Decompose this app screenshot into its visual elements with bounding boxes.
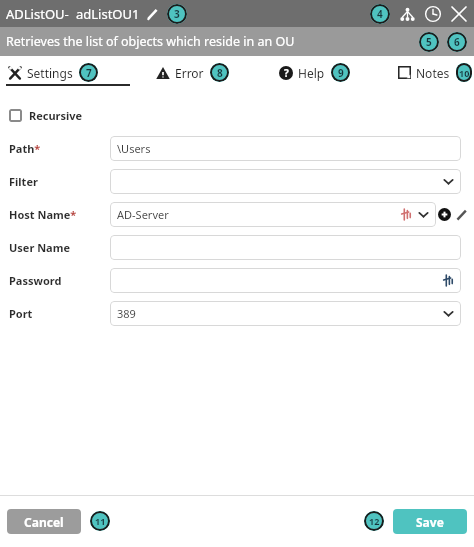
button[interactable]: ? xyxy=(277,63,352,82)
button[interactable]: Edit host xyxy=(453,206,470,223)
staticText: Password xyxy=(9,273,62,288)
staticText: 11 xyxy=(95,515,106,527)
staticText: Save xyxy=(416,514,444,530)
staticText: 8 xyxy=(217,66,223,80)
staticText: 6 xyxy=(454,35,460,49)
button[interactable]: Close xyxy=(448,3,470,25)
staticText: 9 xyxy=(338,66,344,80)
button[interactable]: AD-Server xyxy=(110,202,436,227)
staticText: Cancel xyxy=(24,514,64,530)
staticText: 4 xyxy=(377,7,383,21)
button[interactable] xyxy=(110,169,461,194)
staticText: Filter xyxy=(9,174,38,189)
staticText: Help xyxy=(298,65,325,81)
staticText: Path* xyxy=(9,141,41,156)
staticText: \Users xyxy=(117,141,151,156)
staticText: 10 xyxy=(459,67,470,79)
staticText: Error xyxy=(175,65,204,81)
button[interactable]: Recursive xyxy=(9,102,474,128)
button[interactable] xyxy=(110,235,461,260)
button[interactable]: Edit name xyxy=(145,6,161,22)
staticText: User Name xyxy=(9,240,71,255)
button[interactable]: History xyxy=(422,3,444,25)
button[interactable]: Cancel xyxy=(7,509,81,534)
staticText: Host Name* xyxy=(9,207,77,222)
button[interactable]: \Users xyxy=(110,136,461,161)
staticText: 5 xyxy=(426,35,432,49)
staticText: Notes xyxy=(416,65,450,81)
button[interactable]: Error xyxy=(154,63,231,82)
staticText: 389 xyxy=(117,306,136,321)
staticText: adListOU1 xyxy=(76,5,140,23)
staticText: ? xyxy=(284,66,289,80)
button[interactable]: Save xyxy=(393,509,467,534)
button[interactable]: Add host xyxy=(436,206,453,223)
button[interactable]: 389 xyxy=(110,301,461,326)
button[interactable] xyxy=(110,268,461,293)
button[interactable]: Notes xyxy=(396,63,474,82)
staticText: Retrieves the list of objects which resi… xyxy=(6,33,295,50)
staticText: 12 xyxy=(369,515,380,527)
staticText: ADListOU- xyxy=(6,5,69,23)
staticText: Settings xyxy=(27,65,73,81)
staticText: Port xyxy=(9,306,33,321)
staticText: 3 xyxy=(174,7,180,21)
button[interactable]: Settings xyxy=(6,63,100,82)
staticText: Recursive xyxy=(29,108,83,123)
button[interactable]: Hierarchy xyxy=(396,3,418,25)
staticText: AD-Server xyxy=(117,207,169,222)
staticText: 7 xyxy=(86,66,92,80)
